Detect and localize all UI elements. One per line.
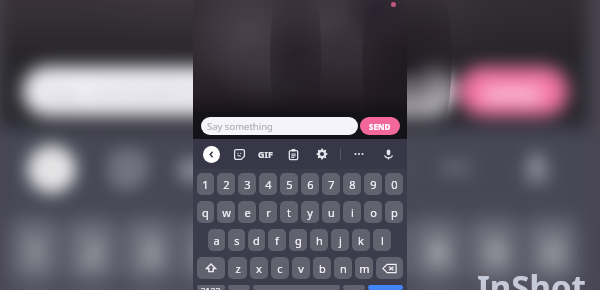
button[interactable]: 2 <box>67 220 116 280</box>
button[interactable]: a <box>208 229 225 251</box>
button[interactable]: 3 <box>124 220 174 280</box>
button[interactable]: 8 <box>412 220 461 280</box>
button[interactable]: GIF <box>258 148 273 160</box>
button[interactable]: 4 <box>182 220 231 280</box>
button[interactable]: 9 <box>364 173 382 195</box>
button[interactable]: h <box>310 229 328 251</box>
button[interactable]: 1 <box>197 173 214 195</box>
button[interactable]: Stickers <box>102 143 152 193</box>
button[interactable]: Clipboard <box>284 145 302 163</box>
button[interactable]: . <box>343 285 365 290</box>
button[interactable]: Shift <box>197 257 225 279</box>
staticText: d <box>253 233 260 248</box>
button[interactable]: SEND <box>459 67 568 116</box>
staticText: t <box>287 205 291 220</box>
button[interactable]: Say something <box>23 67 453 116</box>
button[interactable]: Back <box>28 146 75 193</box>
staticText: Say something <box>39 75 220 110</box>
button[interactable]: GIF <box>179 151 220 184</box>
button[interactable]: g <box>289 229 307 251</box>
button[interactable]: 8 <box>343 173 361 195</box>
button[interactable]: y <box>301 201 319 223</box>
button[interactable]: More options <box>350 145 368 163</box>
button[interactable]: Clipboard <box>250 143 300 193</box>
button[interactable]: 6 <box>297 220 346 280</box>
staticText: GIF <box>179 151 220 184</box>
button[interactable]: w <box>217 201 235 223</box>
button[interactable]: SEND <box>360 117 400 135</box>
button[interactable]: 7 <box>322 173 340 195</box>
button[interactable]: u <box>322 201 340 223</box>
button[interactable]: m <box>355 257 373 279</box>
button[interactable]: c <box>271 257 289 279</box>
button[interactable]: Settings <box>330 143 379 193</box>
button[interactable]: Backspace <box>376 257 403 279</box>
staticText: m <box>359 261 370 276</box>
button[interactable]: x <box>250 257 268 279</box>
button[interactable]: 0 <box>527 220 576 280</box>
button[interactable]: e <box>238 201 256 223</box>
button[interactable]: More options <box>431 143 480 193</box>
staticText: a <box>213 233 220 248</box>
button[interactable]: 3 <box>238 173 256 195</box>
button[interactable]: 7 <box>354 220 404 280</box>
button[interactable]: d <box>248 229 265 251</box>
staticText: f <box>275 233 279 248</box>
staticText: 1 <box>26 231 45 272</box>
button[interactable]: 0 <box>385 173 403 195</box>
button[interactable]: q <box>197 201 214 223</box>
staticText: 5 <box>286 177 293 192</box>
button[interactable]: v <box>292 257 310 279</box>
button[interactable]: 6 <box>301 173 319 195</box>
button[interactable]: p <box>385 201 403 223</box>
staticText: 2 <box>83 231 102 272</box>
button[interactable]: 2 <box>217 173 235 195</box>
button[interactable]: Stickers <box>230 145 248 163</box>
button[interactable]: z <box>228 257 247 279</box>
button[interactable]: f <box>268 229 286 251</box>
button[interactable]: n <box>334 257 352 279</box>
staticText: n <box>340 261 347 276</box>
button[interactable]: r <box>259 201 277 223</box>
staticText: h <box>316 233 323 248</box>
staticText: z <box>235 261 241 276</box>
button[interactable]: 4 <box>259 173 277 195</box>
staticText: e <box>244 205 251 220</box>
button[interactable]: 5 <box>280 173 298 195</box>
staticText: 2 <box>223 177 230 192</box>
button[interactable]: k <box>352 229 370 251</box>
button[interactable]: Enter <box>368 285 403 290</box>
button[interactable]: b <box>313 257 331 279</box>
staticText: 9 <box>370 177 377 192</box>
button[interactable]: Voice input <box>379 145 397 163</box>
staticText: 0 <box>391 177 398 192</box>
button[interactable]: Voice input <box>511 143 560 193</box>
button[interactable]: j <box>331 229 349 251</box>
button[interactable]: Back <box>203 146 220 163</box>
staticText: SEND <box>369 121 391 132</box>
staticText: g <box>295 233 302 248</box>
button[interactable] <box>253 285 340 290</box>
staticText: w <box>222 205 231 220</box>
staticText: Say something <box>207 120 273 133</box>
staticText: SEND <box>483 77 543 108</box>
staticText: 1 <box>202 177 209 192</box>
staticText: 0 <box>543 231 563 272</box>
button[interactable]: i <box>343 201 361 223</box>
button[interactable]: Say something <box>201 117 358 135</box>
button[interactable]: o <box>364 201 382 223</box>
button[interactable]: 5 <box>239 220 289 280</box>
button[interactable]: , <box>228 285 250 290</box>
button[interactable]: l <box>373 229 391 251</box>
button[interactable]: s <box>228 229 245 251</box>
staticText: 5 <box>256 231 275 272</box>
button[interactable]: 1 <box>12 220 59 280</box>
button[interactable]: ?123 <box>197 285 225 290</box>
button[interactable]: 9 <box>469 220 519 280</box>
staticText: 4 <box>265 177 272 192</box>
button[interactable]: Settings <box>313 145 331 163</box>
staticText: i <box>351 205 354 220</box>
button[interactable]: t <box>280 201 298 223</box>
